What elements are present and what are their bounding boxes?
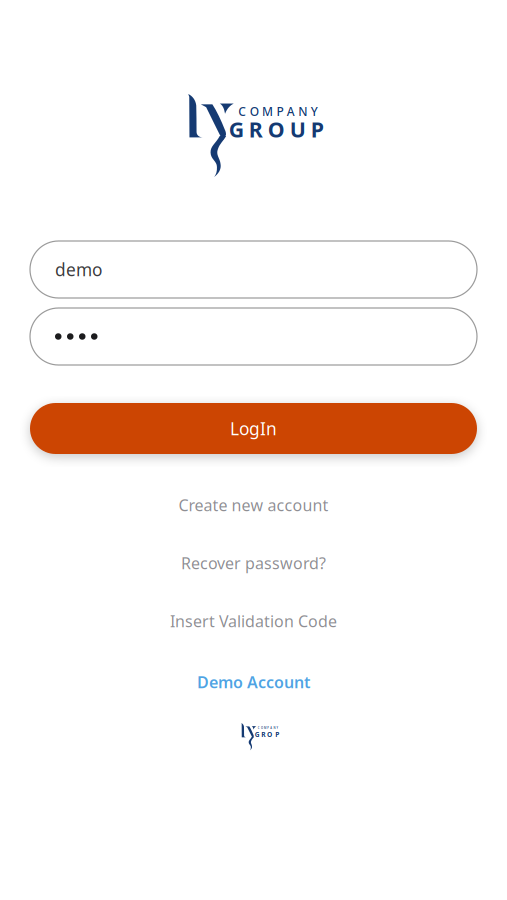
button[interactable]: Insert Validation Code xyxy=(0,606,507,636)
staticText: O xyxy=(268,115,285,143)
staticText: Y xyxy=(311,103,318,119)
staticText: P xyxy=(276,103,283,119)
staticText: G xyxy=(255,730,260,739)
staticText: Demo Account xyxy=(197,671,310,693)
staticText: N xyxy=(273,726,275,730)
staticText: C xyxy=(258,726,260,730)
staticText: Recover password? xyxy=(181,552,326,574)
staticText: Y xyxy=(277,726,279,730)
button[interactable]: Demo Account xyxy=(0,667,507,697)
staticText: U xyxy=(290,115,306,143)
staticText: demo xyxy=(55,258,102,281)
staticText: P xyxy=(311,115,324,143)
button[interactable]: Create new account xyxy=(0,490,507,520)
staticText: O xyxy=(250,103,259,119)
staticText: M xyxy=(264,726,266,730)
staticText: A xyxy=(270,726,272,730)
staticText: A xyxy=(287,103,295,119)
button[interactable]: Recover password? xyxy=(0,548,507,578)
staticText: N xyxy=(298,103,307,119)
staticText: O xyxy=(261,726,263,730)
staticText: R xyxy=(249,115,263,143)
staticText: C xyxy=(238,103,246,119)
staticText: G xyxy=(229,115,244,143)
staticText: R xyxy=(261,730,265,739)
staticText: LogIn xyxy=(230,417,277,440)
staticText: P xyxy=(275,730,279,739)
staticText: P xyxy=(267,726,269,730)
staticText: M xyxy=(262,103,273,119)
staticText: Insert Validation Code xyxy=(170,610,337,632)
staticText: O xyxy=(267,730,272,739)
staticText: Create new account xyxy=(178,494,328,516)
button[interactable]: LogIn xyxy=(30,403,477,454)
